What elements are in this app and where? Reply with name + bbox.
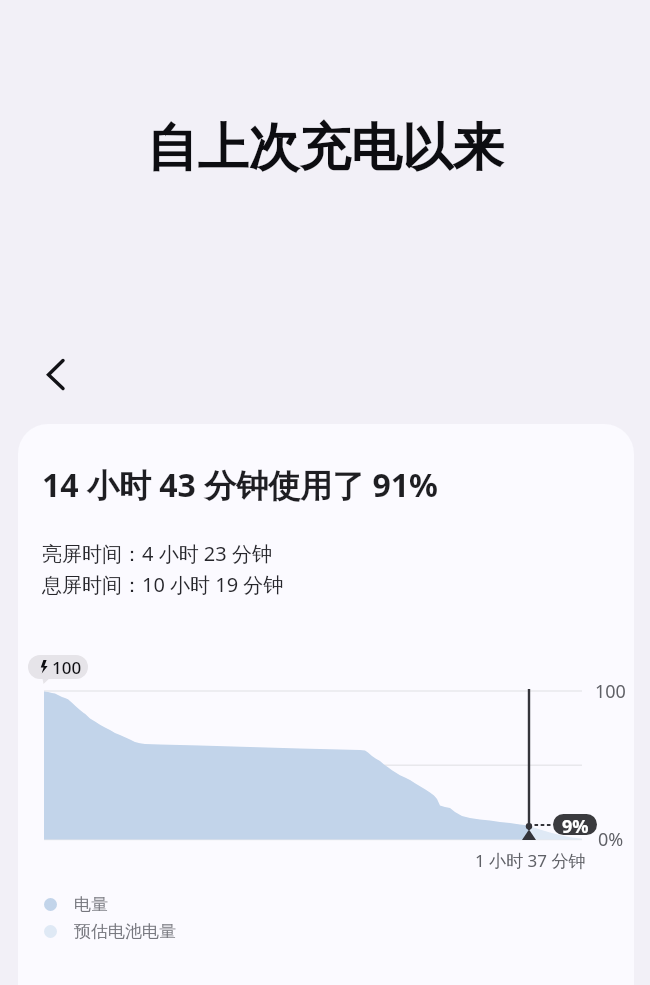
staticText: 14 小时 43 分钟使用了 91% [42, 463, 438, 507]
button[interactable]: Back [27, 346, 83, 402]
button[interactable]: 14 小时 43 分钟使用了 91% [18, 424, 634, 985]
staticText: 电量 [74, 894, 108, 915]
staticText: 100 [595, 679, 626, 704]
staticText: 息屏时间：10 小时 19 分钟 [42, 571, 284, 598]
staticText: 0% [598, 827, 624, 852]
staticText: 9% [562, 814, 589, 835]
staticText: 自上次充电以来 [0, 116, 650, 180]
button[interactable]: 预估电池电量 [44, 921, 176, 942]
button[interactable]: Charged to 100 percent [28, 655, 88, 679]
staticText: 100 [52, 656, 82, 679]
staticText: 预估电池电量 [74, 921, 176, 942]
staticText: 亮屏时间：4 小时 23 分钟 [42, 540, 272, 567]
staticText: 1 小时 37 分钟 [475, 849, 586, 872]
button[interactable]: 电量 [44, 894, 108, 915]
button[interactable]: 9% [553, 814, 597, 835]
